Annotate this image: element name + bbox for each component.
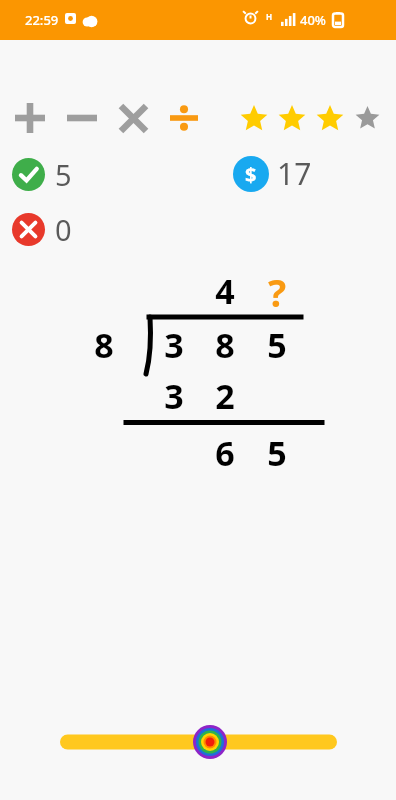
staticText: 2 bbox=[215, 373, 235, 419]
staticText: 22:59 bbox=[25, 11, 59, 29]
staticText: 40% bbox=[300, 11, 326, 29]
button[interactable]: Level star 1 bbox=[235, 100, 272, 137]
button[interactable]: Missing quotient digit bbox=[255, 266, 299, 312]
button[interactable]: Level star 2 bbox=[273, 100, 310, 137]
button[interactable]: 5 bbox=[12, 155, 72, 194]
button[interactable]: 0 bbox=[12, 210, 72, 249]
staticText: 5 bbox=[55, 155, 72, 194]
button[interactable]: Level star 3 bbox=[311, 100, 348, 137]
staticText: 17 bbox=[277, 153, 312, 194]
staticText: ? bbox=[268, 266, 287, 312]
staticText: 6 bbox=[215, 430, 235, 476]
staticText: 3 bbox=[164, 322, 184, 368]
staticText: 5 bbox=[267, 322, 287, 368]
button[interactable]: Multiplication bbox=[111, 96, 155, 140]
button[interactable]: Level star 4 bbox=[349, 100, 386, 137]
button[interactable]: Subtraction bbox=[60, 96, 104, 140]
button[interactable]: $ bbox=[233, 153, 312, 194]
button[interactable]: Division bbox=[162, 96, 206, 140]
staticText: $ bbox=[245, 161, 257, 188]
staticText: 5 bbox=[267, 430, 287, 476]
button[interactable]: Difficulty slider bbox=[46, 714, 350, 770]
staticText: 3 bbox=[164, 373, 184, 419]
staticText: 8 bbox=[215, 322, 235, 368]
staticText: 4 bbox=[215, 268, 235, 314]
staticText: 0 bbox=[55, 210, 72, 249]
button[interactable]: Addition bbox=[8, 96, 52, 140]
staticText: 8 bbox=[94, 322, 114, 368]
staticText: H bbox=[266, 11, 273, 22]
